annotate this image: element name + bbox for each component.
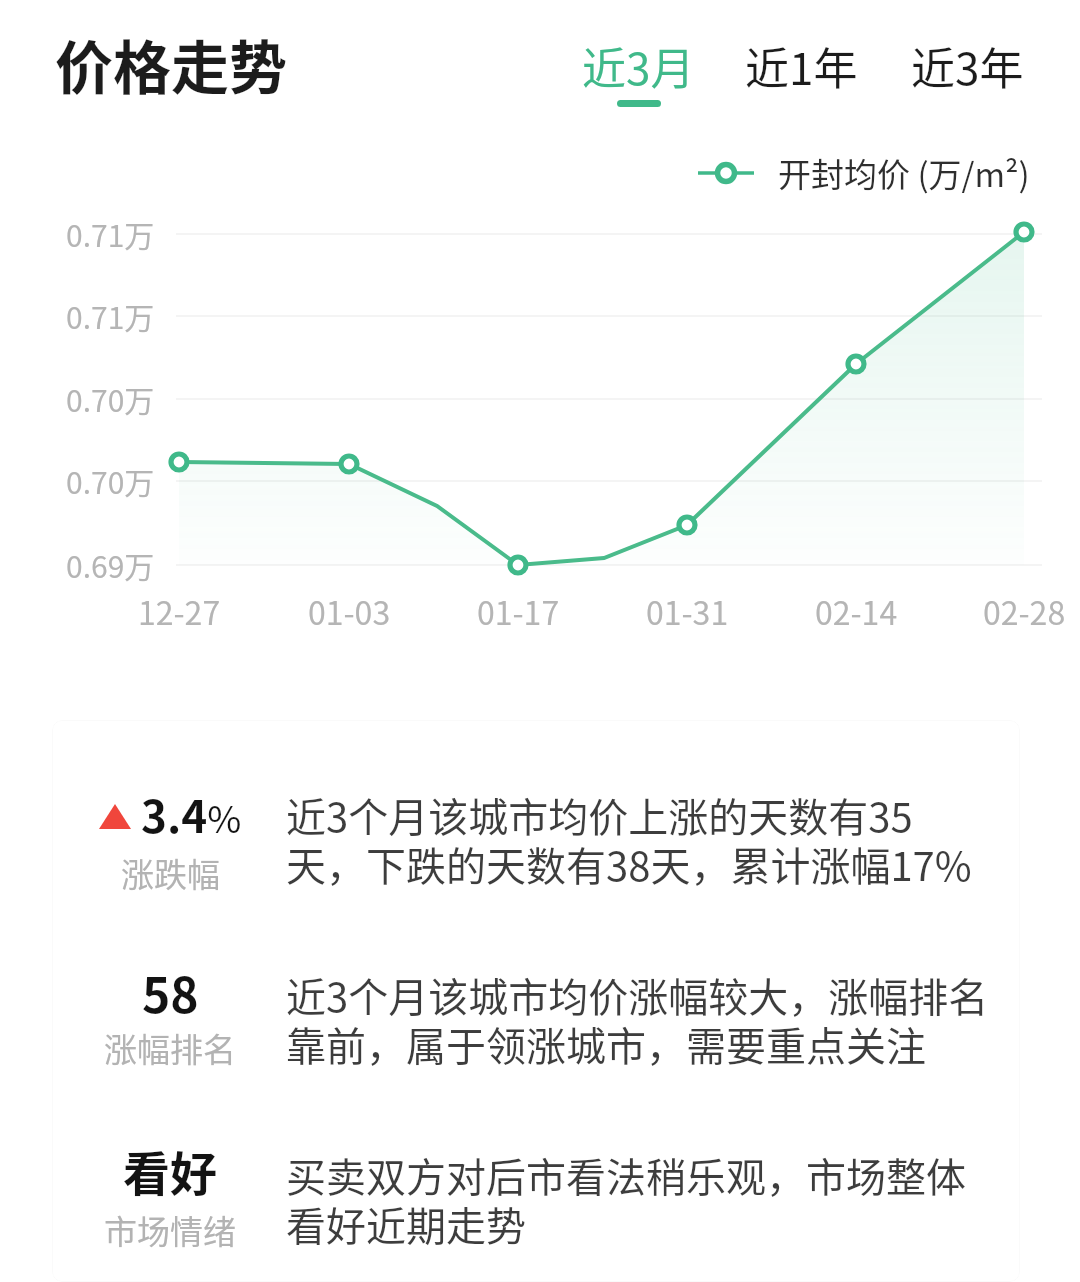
staticText: 近3年 xyxy=(911,34,1024,98)
staticText: 涨幅排名 xyxy=(104,1024,236,1072)
staticText: 开封均价 (万/m²) xyxy=(778,149,1030,197)
staticText: 近3个月该城市均价涨幅较大，涨幅排名 靠前，属于领涨城市，需要重点关注 xyxy=(286,966,1046,1073)
other: 开封均价折线图例 xyxy=(698,152,754,194)
staticText: 看好 xyxy=(123,1136,217,1204)
staticText: 价格走势 xyxy=(55,22,288,106)
staticText: 01-03 xyxy=(308,588,391,634)
staticText: 02-28 xyxy=(983,588,1066,634)
staticText: 12-27 xyxy=(138,588,221,634)
staticText: 01-17 xyxy=(477,588,560,634)
staticText: 0.70万 xyxy=(66,459,155,502)
staticText: 近1年 xyxy=(745,34,858,98)
staticText: 0.70万 xyxy=(66,377,155,420)
staticText: 58 xyxy=(142,957,199,1027)
button[interactable]: 近3年 xyxy=(897,34,1038,98)
staticText: 0.71万 xyxy=(66,212,155,255)
staticText: 市场情绪 xyxy=(104,1206,236,1254)
button[interactable] xyxy=(53,1120,1019,1280)
button[interactable] xyxy=(53,940,1019,1100)
staticText: 3.4% xyxy=(141,782,242,846)
staticText: 01-31 xyxy=(646,588,729,634)
staticText: 0.71万 xyxy=(66,294,155,337)
staticText: 涨跌幅 xyxy=(121,849,220,897)
staticText: 近3个月该城市均价上涨的天数有35 天，下跌的天数有38天，累计涨幅17% xyxy=(286,786,1046,893)
staticText: 02-14 xyxy=(815,588,898,634)
button[interactable]: 近3月 xyxy=(568,34,709,107)
staticText: 买卖双方对后市看法稍乐观，市场整体 看好近期走势 xyxy=(286,1146,1046,1253)
button[interactable]: 近1年 xyxy=(731,34,872,98)
staticText: 0.69万 xyxy=(66,543,155,586)
staticText: 近3月 xyxy=(582,34,695,98)
button[interactable] xyxy=(53,760,1019,920)
